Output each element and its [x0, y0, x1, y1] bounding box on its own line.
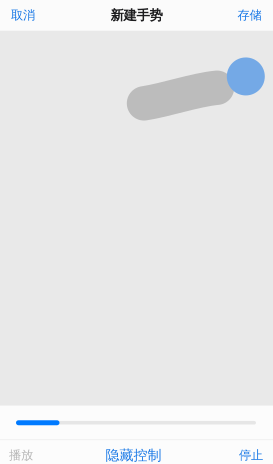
staticText: 播放	[9, 447, 33, 463]
staticText: 停止	[239, 447, 263, 463]
staticText: 存储	[237, 7, 261, 23]
button[interactable]: 停止	[230, 440, 273, 464]
staticText: 隐藏控制	[105, 446, 161, 464]
button[interactable]: 播放	[0, 440, 42, 464]
button[interactable]: 隐藏控制	[96, 439, 170, 464]
button[interactable]: 存储	[228, 0, 273, 30]
staticText: 新建手势	[110, 7, 162, 24]
staticText: 取消	[11, 7, 35, 23]
button[interactable]: 取消	[0, 0, 44, 30]
